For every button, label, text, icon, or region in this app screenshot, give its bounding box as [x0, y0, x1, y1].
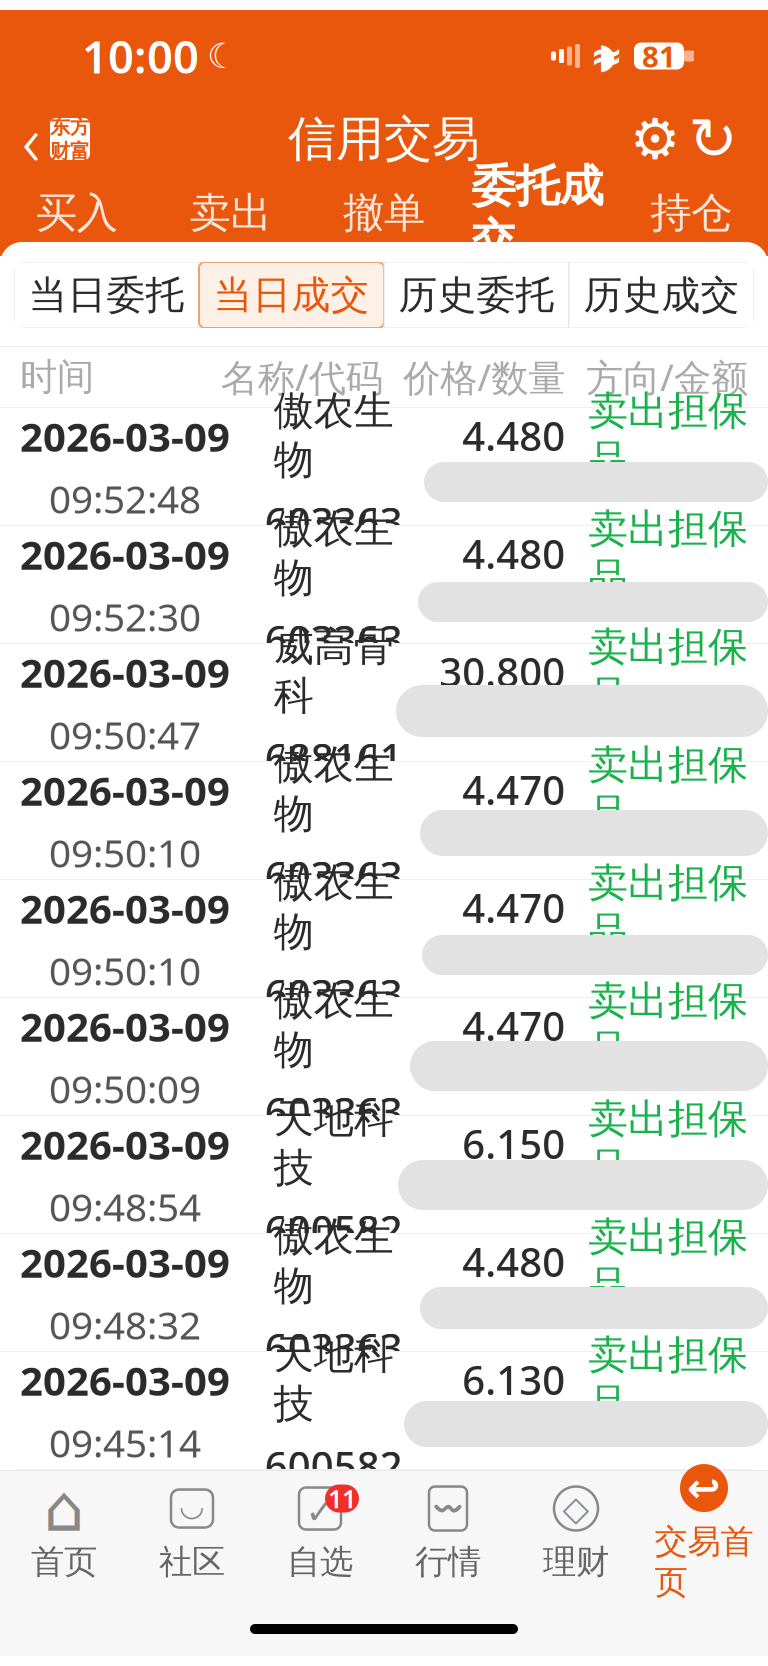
button[interactable]: 撤单: [307, 174, 461, 252]
staticText: 卖出: [189, 188, 271, 238]
button[interactable]: 2026-03-09: [0, 1116, 768, 1234]
button[interactable]: 2026-03-09: [0, 1234, 768, 1352]
staticText: 当日成交: [213, 271, 369, 319]
staticText: 2026-03-09: [20, 528, 230, 581]
staticText: 历史成交: [583, 271, 739, 319]
staticText: 603363: [265, 849, 403, 902]
staticText: [663, 1439, 673, 1492]
button[interactable]: 当日成交: [199, 262, 384, 328]
button[interactable]: �averse: [640, 1449, 768, 1603]
staticText: 4.470: [462, 763, 565, 816]
staticText: 理财: [543, 1541, 609, 1582]
staticText: 30.800: [439, 645, 565, 698]
staticText: 2026-03-09: [20, 1000, 230, 1053]
staticText: 2026-03-09: [20, 646, 230, 699]
staticText: [509, 1416, 519, 1469]
staticText: 傲农生物: [274, 504, 394, 603]
staticText: 2026-03-09: [20, 1118, 230, 1171]
staticText: 600582: [265, 1203, 403, 1256]
button[interactable]: 卖出: [154, 174, 307, 252]
staticText: 卖出担保品: [588, 1330, 748, 1429]
staticText: 交易首页: [654, 1521, 753, 1603]
staticText: [663, 613, 673, 666]
staticText: 傲农生物: [274, 1212, 394, 1311]
staticText: 09:45:14: [49, 1417, 201, 1468]
staticText: [663, 967, 673, 1020]
staticText: 信用交易: [288, 109, 480, 168]
staticText: 2026-03-09: [20, 1236, 230, 1289]
staticText: 4.480: [462, 409, 565, 462]
staticText: 4.480: [462, 1235, 565, 1288]
staticText: ◇: [562, 1489, 589, 1528]
button[interactable]: 买入: [0, 174, 154, 252]
button[interactable]: ◡: [128, 1469, 256, 1582]
button[interactable]: 2026-03-09: [0, 762, 768, 880]
staticText: 603363: [265, 495, 403, 548]
staticText: 10:00: [82, 26, 199, 86]
staticText: 威高骨科: [274, 622, 394, 721]
staticText: 09:50:10: [49, 827, 201, 878]
staticText: 卖出担保品: [588, 1212, 748, 1311]
staticText: 首页: [31, 1541, 97, 1582]
staticText: 09:52:30: [49, 591, 201, 642]
staticText: 买入: [36, 188, 118, 238]
staticText: 2026-03-09: [20, 1354, 230, 1407]
staticText: 历史委托: [398, 271, 554, 319]
button[interactable]: 刷新: [684, 110, 742, 168]
staticText: 2026-03-09: [20, 764, 230, 817]
staticText: 卖出担保品: [588, 622, 748, 721]
button[interactable]: 〰: [384, 1469, 512, 1582]
button[interactable]: 委托成交: [461, 145, 614, 281]
staticText: ≈: [590, 33, 624, 79]
staticText: [497, 708, 507, 761]
staticText: 傲农生物: [274, 740, 394, 839]
staticText: ◗: [598, 36, 616, 76]
button[interactable]: 设置: [626, 110, 684, 168]
staticText: 卖出担保品: [588, 858, 748, 957]
button[interactable]: 2026-03-09: [0, 526, 768, 644]
staticText: 卖出担保品: [588, 504, 748, 603]
staticText: ◡: [180, 1489, 203, 1522]
staticText: [509, 826, 519, 879]
button[interactable]: ◇: [512, 1469, 640, 1582]
staticText: 方向/金额: [586, 352, 748, 402]
button[interactable]: 2026-03-09: [0, 644, 768, 762]
staticText: 4.470: [462, 881, 565, 934]
staticText: 603363: [265, 967, 403, 1020]
staticText: [509, 590, 519, 643]
button[interactable]: ✓: [256, 1469, 384, 1582]
staticText: 天地科技: [274, 1094, 394, 1193]
button[interactable]: 2026-03-09: [0, 998, 768, 1116]
button[interactable]: 2026-03-09: [0, 880, 768, 998]
staticText: 持仓: [650, 188, 732, 238]
staticText: 撤单: [343, 188, 425, 238]
staticText: 社区: [159, 1541, 225, 1582]
staticText: [663, 1203, 673, 1256]
staticText: ⚙: [630, 107, 680, 171]
staticText: 〰: [431, 1493, 465, 1524]
staticText: [509, 1298, 519, 1351]
button[interactable]: 2026-03-09: [0, 1352, 768, 1470]
staticText: 09:50:47: [49, 709, 201, 760]
button[interactable]: 持仓: [614, 174, 768, 252]
button[interactable]: 返回: [0, 83, 90, 195]
staticText: ⌂: [43, 1472, 84, 1545]
staticText: 价格/数量: [403, 352, 565, 402]
button[interactable]: 历史成交: [569, 262, 754, 328]
staticText: [509, 472, 519, 525]
staticText: 81: [642, 36, 676, 75]
button[interactable]: 2026-03-09: [0, 408, 768, 526]
staticText: ↻: [688, 106, 737, 172]
staticText: 卖出担保品: [588, 1094, 748, 1193]
staticText: 09:52:48: [49, 473, 201, 524]
staticText: 603363: [265, 613, 403, 666]
staticText: 委托成交: [472, 159, 604, 267]
staticText: 名称/代码: [221, 352, 383, 402]
button[interactable]: 当日委托: [14, 262, 199, 328]
staticText: [663, 1085, 673, 1138]
button[interactable]: ⌂: [0, 1469, 128, 1582]
staticText: [509, 1062, 519, 1115]
button[interactable]: 历史委托: [384, 262, 569, 328]
staticText: 09:48:54: [49, 1181, 201, 1232]
staticText: ‹: [22, 93, 40, 185]
